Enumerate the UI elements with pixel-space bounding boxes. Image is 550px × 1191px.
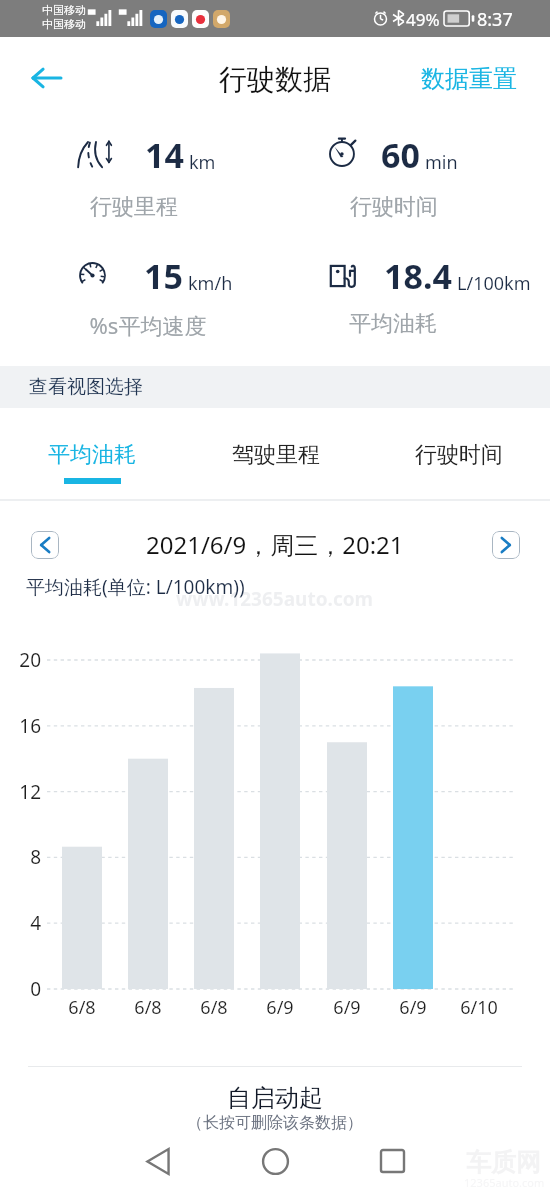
staticText: 8:37 xyxy=(477,7,513,32)
button[interactable]: Home xyxy=(251,1137,299,1185)
staticText: 车质网 xyxy=(466,1147,541,1178)
staticText: 6/9 xyxy=(250,995,310,1020)
staticText: min xyxy=(425,150,458,175)
button[interactable]: Next xyxy=(492,531,520,559)
button[interactable]: 平均油耗 xyxy=(0,408,184,484)
staticText: 0 xyxy=(14,976,41,1002)
staticText: 中国移动 xyxy=(42,17,86,31)
staticText: 6/10 xyxy=(449,995,509,1020)
staticText: 行驶时间 xyxy=(274,193,514,221)
staticText: L/100km xyxy=(457,271,531,296)
staticText: 6/9 xyxy=(317,995,377,1020)
staticText: 驾驶里程 xyxy=(232,441,320,469)
staticText: 行驶数据 xyxy=(219,62,331,97)
staticText: 数据重置 xyxy=(421,64,517,94)
staticText: 6/9 xyxy=(383,995,443,1020)
staticText: （长按可删除该条数据） xyxy=(0,1113,550,1133)
staticText: 自启动起 xyxy=(0,1083,550,1113)
staticText: 查看视图选择 xyxy=(29,375,143,399)
button[interactable]: Back xyxy=(134,1137,182,1185)
staticText: 平均油耗 xyxy=(48,441,136,469)
staticText: 6/8 xyxy=(118,995,178,1020)
button[interactable]: Recents xyxy=(368,1137,416,1185)
staticText: 16 xyxy=(14,713,41,739)
staticText: 15 xyxy=(144,253,183,299)
button[interactable]: Previous xyxy=(31,531,59,559)
staticText: 20 xyxy=(14,647,41,673)
staticText: 行驶里程 xyxy=(14,193,254,221)
button[interactable]: 驾驶里程 xyxy=(184,408,367,478)
staticText: 6/8 xyxy=(52,995,112,1020)
staticText: 49% xyxy=(406,8,440,31)
staticText: %s平均速度 xyxy=(28,310,268,340)
staticText: km xyxy=(189,150,216,175)
staticText: www.12365auto.com xyxy=(176,586,374,612)
staticText: 平均油耗(单位: L/100km)) xyxy=(26,574,245,600)
staticText: 60 xyxy=(381,132,420,178)
staticText: 行驶时间 xyxy=(415,441,503,469)
button[interactable]: 行驶时间 xyxy=(367,408,550,478)
staticText: 12365auto.com xyxy=(464,1175,545,1190)
staticText: 8 xyxy=(14,844,41,870)
staticText: 4 xyxy=(14,910,41,936)
staticText: 14 xyxy=(145,132,184,178)
staticText: 2021/6/9，周三，20:21 xyxy=(146,528,404,561)
button[interactable]: 数据重置 xyxy=(417,58,521,100)
staticText: 12 xyxy=(14,779,41,805)
staticText: 6/8 xyxy=(184,995,244,1020)
staticText: km/h xyxy=(188,271,233,296)
button[interactable]: Back xyxy=(24,55,70,101)
staticText: 18.4 xyxy=(384,253,452,299)
staticText: 中国移动 xyxy=(42,3,86,17)
staticText: 平均油耗 xyxy=(273,310,513,338)
